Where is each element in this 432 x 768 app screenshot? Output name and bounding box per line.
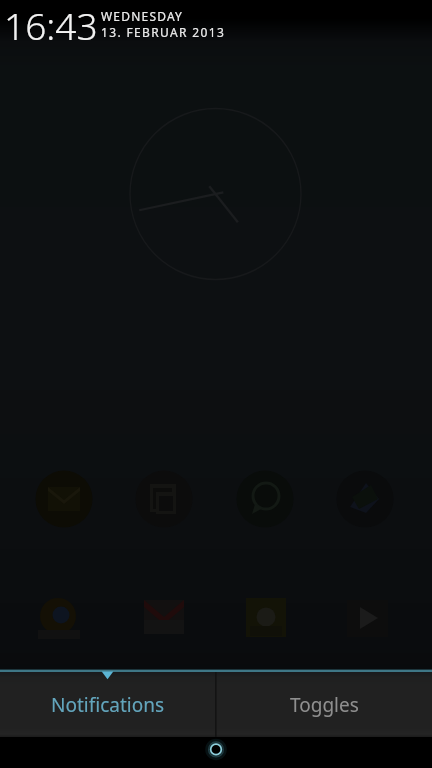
staticText: 16:43: [4, 0, 98, 44]
staticText: Toggles: [290, 692, 359, 718]
staticText: Notifications: [51, 692, 165, 718]
staticText: 13. FEBRUAR 2013: [101, 24, 226, 40]
button[interactable]: Home: [194, 737, 238, 768]
staticText: WEDNESDAY: [101, 8, 184, 24]
button[interactable]: Notifications: [0, 671, 216, 737]
button[interactable]: Toggles: [216, 671, 432, 737]
